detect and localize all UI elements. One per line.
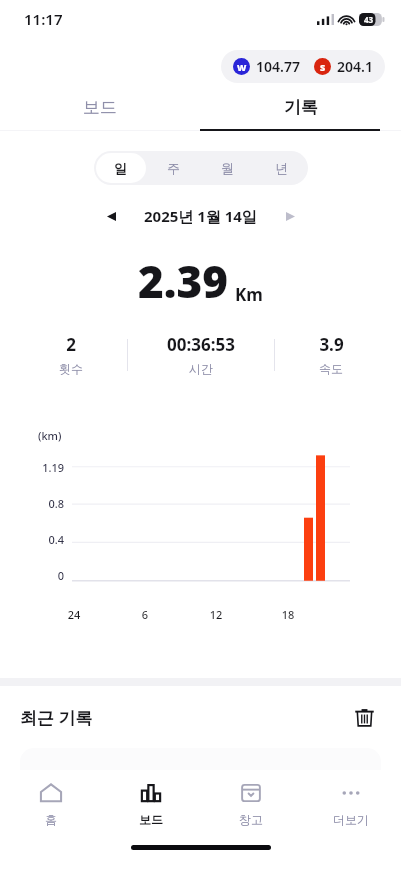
button[interactable]: Previous day: [96, 201, 126, 231]
staticText: 속도: [319, 361, 343, 376]
button[interactable]: 보드: [101, 775, 201, 833]
staticText: 24: [62, 607, 86, 622]
staticText: 2: [66, 333, 76, 356]
button[interactable]: Next day: [275, 201, 305, 231]
staticText: 횟수: [59, 361, 83, 376]
staticText: 2.39: [138, 251, 229, 311]
staticText: 기록: [284, 97, 318, 118]
staticText: 홈: [45, 812, 57, 827]
staticText: (km): [38, 428, 62, 443]
button[interactable]: 3.9: [275, 333, 387, 376]
staticText: 2025년 1월 14일: [144, 206, 257, 226]
button[interactable]: 일: [94, 151, 147, 185]
button[interactable]: W: [221, 50, 385, 83]
staticText: 3.9: [319, 333, 344, 356]
staticText: 204.1: [337, 57, 373, 76]
staticText: 최근 기록: [20, 706, 93, 729]
button[interactable]: 기록: [200, 83, 401, 131]
button[interactable]: 홈: [0, 775, 101, 833]
button[interactable]: 주: [147, 151, 200, 185]
button[interactable]: 00:36:53: [128, 333, 274, 376]
button[interactable]: 더보기: [301, 775, 401, 833]
button[interactable]: 보드: [0, 83, 200, 131]
staticText: 0.4: [30, 532, 64, 547]
staticText: 18: [276, 607, 300, 622]
staticText: 104.77: [256, 57, 300, 76]
staticText: 0: [30, 568, 64, 583]
staticText: 43: [364, 14, 374, 25]
staticText: W: [237, 61, 247, 73]
button[interactable]: Delete records: [347, 700, 381, 734]
staticText: 보드: [83, 97, 117, 118]
staticText: Km: [235, 283, 263, 306]
staticText: S: [320, 61, 326, 73]
staticText: 창고: [239, 812, 263, 827]
button[interactable]: 년: [254, 151, 308, 185]
staticText: 보드: [139, 812, 163, 827]
staticText: 1.19: [30, 460, 64, 475]
staticText: 6: [133, 607, 157, 622]
button[interactable]: 창고: [201, 775, 301, 833]
staticText: 0.8: [30, 496, 64, 511]
staticText: 월: [221, 160, 234, 176]
staticText: 시간: [189, 361, 213, 376]
button[interactable]: 2: [14, 333, 127, 376]
staticText: 11:17: [24, 9, 63, 29]
staticText: 00:36:53: [167, 333, 235, 356]
staticText: 년: [275, 160, 288, 176]
staticText: 12: [204, 607, 228, 622]
staticText: 더보기: [333, 812, 369, 827]
staticText: 주: [167, 160, 180, 176]
staticText: 일: [114, 160, 127, 176]
button[interactable]: 월: [200, 151, 254, 185]
